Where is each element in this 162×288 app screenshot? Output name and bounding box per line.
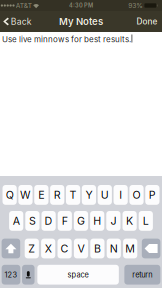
staticText: J [110, 214, 116, 227]
button[interactable]: K [122, 211, 137, 231]
staticText: S [29, 214, 36, 227]
button[interactable]: W [18, 185, 33, 205]
staticText: L [143, 214, 149, 227]
button[interactable]: U [98, 185, 112, 205]
staticText: X [45, 242, 52, 255]
button[interactable]: Back [0, 11, 38, 32]
staticText: 4:30 PM [69, 2, 93, 9]
button[interactable]: 123 [2, 265, 20, 285]
button[interactable]: L [139, 211, 153, 231]
button[interactable]: F [58, 211, 72, 231]
staticText: C [61, 242, 69, 255]
button[interactable]: Shift [2, 239, 20, 258]
staticText: T [70, 188, 77, 201]
button[interactable]: R [50, 185, 64, 205]
staticText: Q [6, 188, 14, 201]
button[interactable]: B [90, 239, 104, 258]
staticText: Back [11, 16, 32, 27]
button[interactable]: Dictate [22, 265, 35, 285]
staticText: V [77, 242, 84, 255]
staticText: G [77, 214, 85, 227]
staticText: K [126, 214, 133, 227]
staticText: Y [85, 188, 92, 201]
button[interactable]: I [113, 185, 128, 205]
staticText: Use live minnows for best results. [2, 34, 131, 44]
staticText: P [149, 188, 156, 201]
button[interactable]: M [123, 239, 137, 258]
button[interactable]: space [37, 265, 119, 285]
button[interactable]: return [124, 265, 160, 285]
staticText: 123 [4, 270, 17, 279]
staticText: F [62, 214, 68, 227]
button[interactable]: C [57, 239, 72, 258]
button[interactable]: Done [130, 11, 162, 32]
button[interactable]: T [66, 185, 80, 205]
staticText: M [125, 242, 135, 255]
button[interactable]: P [145, 185, 159, 205]
button[interactable]: J [106, 211, 120, 231]
button[interactable]: Z [25, 239, 39, 258]
staticText: I [119, 188, 122, 201]
staticText: return [132, 270, 152, 279]
button[interactable]: E [34, 185, 48, 205]
button[interactable]: H [90, 211, 104, 231]
staticText: Z [28, 242, 35, 255]
staticText: N [110, 242, 118, 255]
staticText: E [38, 188, 44, 201]
staticText: Done [136, 16, 157, 26]
staticText: O [132, 188, 140, 201]
staticText: space [68, 270, 89, 279]
staticText: H [93, 214, 101, 227]
button[interactable]: O [129, 185, 144, 205]
button[interactable]: X [41, 239, 55, 258]
button[interactable]: G [74, 211, 88, 231]
staticText: R [54, 188, 61, 201]
button[interactable]: D [41, 211, 56, 231]
button[interactable]: Y [82, 185, 96, 205]
button[interactable]: S [25, 211, 39, 231]
staticText: D [45, 214, 53, 227]
staticText: AT&T [16, 1, 32, 10]
staticText: B [94, 242, 101, 255]
staticText: My Notes [59, 16, 103, 27]
button[interactable]: N [107, 239, 121, 258]
button[interactable]: A [9, 211, 23, 231]
button[interactable]: Q [2, 185, 17, 205]
staticText: 93% [128, 1, 143, 10]
button[interactable]: V [74, 239, 88, 258]
staticText: U [101, 188, 109, 201]
staticText: A [13, 214, 20, 227]
staticText: W [20, 188, 31, 201]
button[interactable]: Delete [142, 239, 160, 258]
